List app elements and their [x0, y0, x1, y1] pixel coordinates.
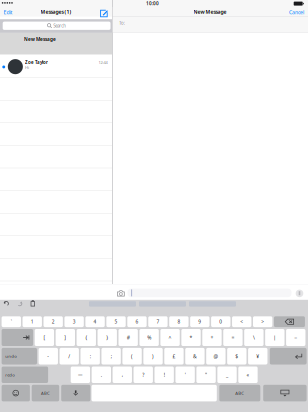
button[interactable]: 5 — [106, 316, 126, 327]
staticText: / — [68, 353, 70, 360]
button[interactable]: = — [223, 329, 243, 346]
button[interactable]: ~ — [286, 329, 305, 346]
button[interactable]: Search — [3, 22, 110, 30]
staticText: 4 — [94, 318, 97, 325]
button[interactable]: ¥ — [248, 348, 267, 364]
button[interactable]: ' — [175, 366, 195, 383]
button[interactable]: 6 — [127, 316, 147, 327]
button[interactable]: Return — [270, 348, 307, 364]
button[interactable]: | — [265, 329, 285, 346]
button[interactable]: Camera — [117, 290, 125, 297]
button[interactable]: Tab — [2, 329, 33, 346]
staticText: ) — [152, 353, 154, 360]
button[interactable]: % — [139, 329, 159, 346]
button[interactable]: : — [80, 348, 100, 364]
button[interactable]: Edit — [4, 9, 22, 15]
button[interactable]: \ — [244, 329, 264, 346]
button[interactable]: Record audio message — [296, 290, 303, 297]
button[interactable]: ABC — [219, 385, 260, 401]
button[interactable]: $ — [227, 348, 247, 364]
button[interactable]: Emoji — [2, 385, 30, 401]
button[interactable]: ; — [101, 348, 121, 364]
staticText: * — [189, 334, 192, 341]
button[interactable]: 0 — [211, 316, 230, 327]
button[interactable]: Zoe Taylor — [0, 55, 112, 77]
button[interactable]: [ — [35, 329, 54, 346]
button[interactable]: Paste — [30, 300, 36, 307]
staticText: | — [273, 334, 276, 341]
staticText: ABC — [41, 390, 50, 396]
staticText: undo — [5, 353, 17, 359]
button[interactable]: undo — [2, 348, 37, 364]
button[interactable]: New Message — [0, 33, 112, 55]
button[interactable]: Hide keyboard — [263, 385, 307, 401]
button[interactable]: £ — [164, 348, 184, 364]
button[interactable]: ABC — [32, 385, 59, 401]
button[interactable]: 7 — [148, 316, 168, 327]
button[interactable]: } — [98, 329, 117, 346]
button[interactable]: * — [181, 329, 201, 346]
button[interactable]: < — [232, 316, 251, 327]
staticText: Zoe Taylor — [25, 59, 48, 65]
button[interactable]: > — [253, 316, 272, 327]
button[interactable]: Undo — [3, 300, 9, 307]
staticText: $ — [235, 353, 238, 360]
button[interactable]: Delete — [274, 316, 305, 327]
button[interactable]: Cancel — [282, 9, 304, 15]
button[interactable]: / — [60, 348, 79, 364]
button[interactable]: ? — [134, 366, 153, 383]
button[interactable]: « — [238, 366, 258, 383]
button[interactable]: Dictate — [61, 385, 90, 401]
staticText: = — [231, 334, 234, 341]
button[interactable]: _ — [217, 366, 237, 383]
button[interactable]: & — [185, 348, 205, 364]
button[interactable]: ) — [143, 348, 163, 364]
staticText: 10:00 — [146, 0, 159, 7]
staticText: [ — [43, 334, 45, 341]
button[interactable]: 3 — [64, 316, 84, 327]
staticText: ~ — [294, 334, 297, 341]
button[interactable]: ^ — [160, 329, 180, 346]
staticText: ' — [185, 371, 186, 378]
button[interactable]: 2 — [43, 316, 63, 327]
button[interactable]: ] — [56, 329, 75, 346]
button[interactable]: 4 — [85, 316, 105, 327]
button[interactable]: . — [92, 366, 111, 383]
staticText: 3 — [73, 318, 76, 325]
button[interactable]: - — [39, 348, 58, 364]
staticText: ¥ — [256, 353, 259, 360]
button[interactable]: 8 — [169, 316, 189, 327]
button[interactable]: Redo — [16, 300, 23, 307]
staticText: 2 — [52, 318, 55, 325]
staticText: ; — [111, 353, 112, 360]
staticText: 8 — [177, 318, 180, 325]
staticText: £ — [172, 353, 175, 360]
button[interactable]: 9 — [190, 316, 210, 327]
button[interactable]: " — [196, 366, 216, 383]
staticText: — — [78, 372, 83, 378]
staticText: Cancel — [289, 9, 304, 16]
staticText: New Message — [193, 8, 226, 15]
button[interactable]: ` — [2, 316, 21, 327]
button[interactable]: # — [118, 329, 138, 346]
staticText: Search — [53, 23, 66, 29]
staticText: New Message — [24, 36, 56, 42]
staticText: . — [101, 371, 102, 378]
button[interactable]: + — [202, 329, 222, 346]
button[interactable]: ( — [122, 348, 142, 364]
button[interactable]: redo — [2, 366, 48, 383]
button[interactable]: 1 — [23, 316, 42, 327]
button[interactable]: Compose — [100, 9, 109, 18]
staticText: « — [246, 371, 249, 378]
button[interactable]: ! — [154, 366, 174, 383]
button[interactable]: @ — [206, 348, 226, 364]
button[interactable]: — — [71, 366, 90, 383]
staticText: ABC — [235, 390, 244, 396]
button[interactable]: , — [113, 366, 132, 383]
staticText: < — [240, 318, 243, 325]
staticText: > — [261, 318, 264, 325]
button[interactable]: { — [77, 329, 96, 346]
